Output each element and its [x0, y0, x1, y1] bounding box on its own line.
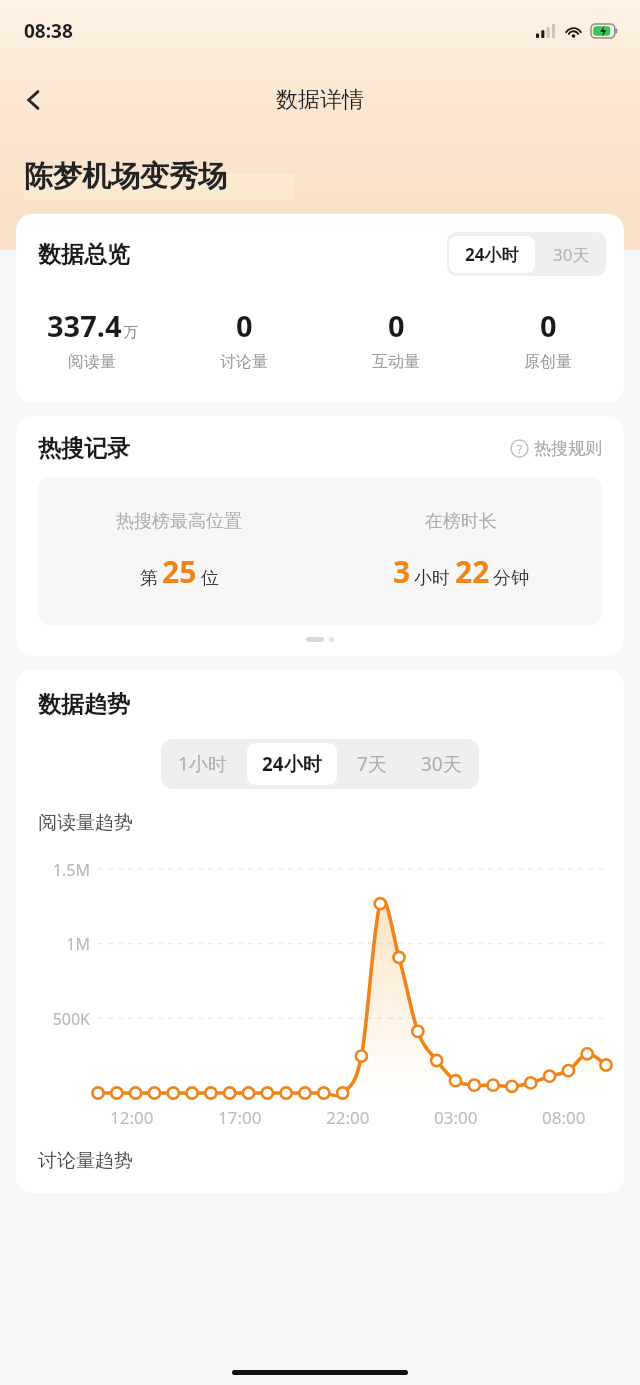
staticText: 热搜榜最高位置: [116, 510, 242, 533]
staticText: 1M: [66, 933, 90, 955]
staticText: 1.5M: [52, 859, 90, 881]
staticText: 24小时: [465, 243, 519, 266]
button[interactable]: 24小时: [449, 236, 535, 273]
staticText: 30天: [553, 243, 590, 266]
staticText: 讨论量: [220, 352, 268, 372]
staticText: 1小时: [178, 751, 227, 777]
staticText: 互动量: [372, 352, 420, 372]
staticText: 阅读量: [68, 352, 116, 372]
staticText: 在榜时长: [425, 510, 497, 533]
staticText: 原创量: [524, 352, 572, 372]
staticText: 08:38: [24, 18, 73, 44]
staticText: 24小时: [262, 751, 322, 777]
staticText: 万: [123, 323, 138, 342]
staticText: 数据趋势: [38, 690, 130, 719]
staticText: 阅读量趋势: [38, 811, 133, 835]
staticText: 08:00: [542, 1106, 586, 1129]
button[interactable]: 30天: [404, 740, 479, 788]
staticText: 22: [455, 551, 490, 592]
staticText: 陈梦机场变秀场: [24, 158, 227, 195]
staticText: 500K: [52, 1008, 90, 1030]
staticText: 第: [140, 567, 158, 590]
staticText: 位: [201, 567, 219, 590]
staticText: 12:00: [110, 1106, 154, 1129]
button[interactable]: 7天: [340, 740, 404, 788]
staticText: 0: [388, 306, 405, 345]
staticText: 0: [236, 306, 253, 345]
staticText: 热搜记录: [38, 434, 130, 463]
staticText: 30天: [421, 751, 462, 777]
staticText: 数据总览: [38, 240, 130, 269]
staticText: 小时: [414, 567, 450, 590]
staticText: 热搜规则: [534, 438, 602, 459]
staticText: 3: [393, 551, 411, 592]
button[interactable]: 30天: [537, 234, 606, 275]
staticText: 0: [540, 306, 557, 345]
button[interactable]: Back: [8, 74, 60, 126]
staticText: 22:00: [326, 1106, 370, 1129]
staticText: 17:00: [218, 1106, 262, 1129]
staticText: ?: [517, 441, 523, 457]
staticText: 分钟: [493, 567, 529, 590]
button[interactable]: 1小时: [161, 740, 244, 788]
staticText: 讨论量趋势: [38, 1149, 133, 1173]
staticText: 数据详情: [276, 86, 364, 114]
staticText: 337.4: [47, 306, 122, 345]
staticText: 03:00: [434, 1106, 478, 1129]
staticText: 25: [162, 551, 197, 592]
staticText: 7天: [357, 751, 387, 777]
button[interactable]: 24小时: [247, 743, 337, 785]
button[interactable]: ?: [506, 434, 606, 463]
